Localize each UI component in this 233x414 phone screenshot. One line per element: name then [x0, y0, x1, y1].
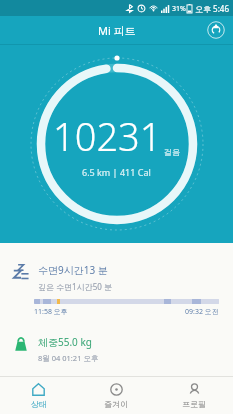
button[interactable]: 즐겨이 [77, 377, 155, 414]
button[interactable]: 10231 [0, 45, 233, 243]
button[interactable]: Sync [207, 21, 225, 39]
staticText: 10231 [53, 110, 162, 162]
staticText: 6.5 km | 411 Cal [82, 166, 151, 178]
staticText: 즐겨이 [104, 399, 128, 409]
staticText: 09:32 오전 [185, 307, 219, 317]
button[interactable]: 프로필 [155, 377, 233, 414]
staticText: 상태 [31, 399, 47, 409]
button[interactable]: 체중55.0 kg [0, 327, 233, 373]
staticText: Mi 피트 [98, 23, 136, 38]
staticText: 프로필 [182, 399, 206, 409]
staticText: 걸음 [164, 147, 180, 157]
staticText: 8월 04 01:21 오후 [38, 353, 99, 363]
button[interactable]: 수면9시간13 분 [0, 253, 233, 323]
button[interactable]: 상태 [0, 377, 77, 414]
staticText: 31% [172, 4, 186, 14]
staticText: 깊은 수면1시간50 분 [38, 281, 112, 292]
staticText: 체중55.0 kg [38, 335, 92, 349]
staticText: 수면9시간13 분 [38, 263, 108, 277]
staticText: 11:58 오후 [34, 307, 68, 317]
staticText: 오후 5:46 [195, 3, 229, 14]
